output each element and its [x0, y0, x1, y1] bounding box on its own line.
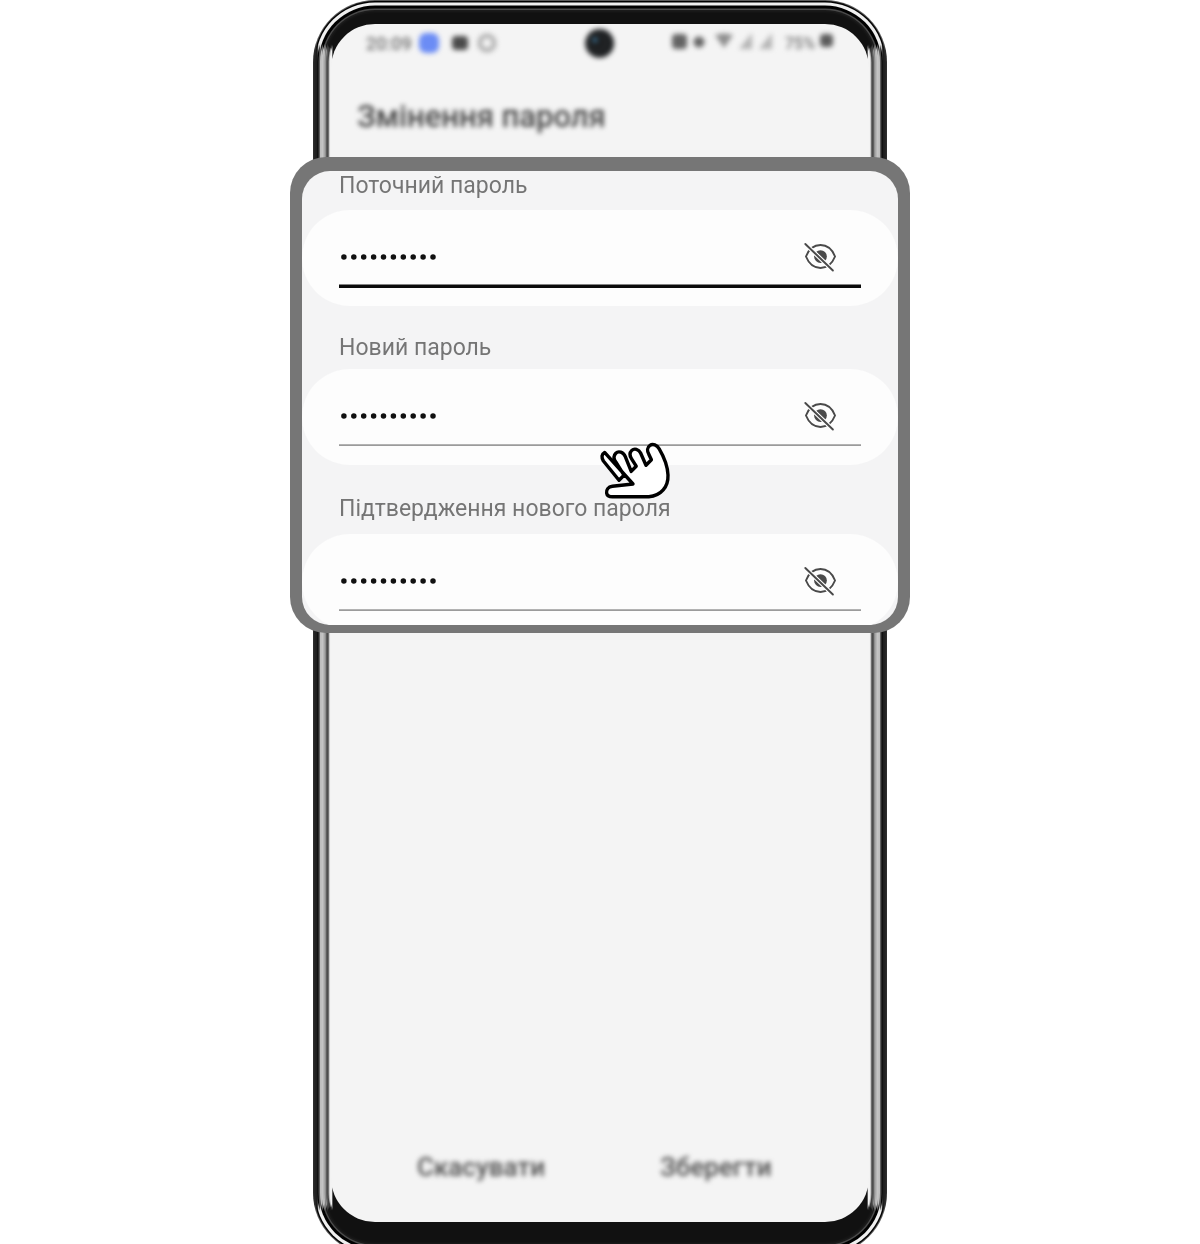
staticText: 20:09 — [366, 33, 412, 54]
button[interactable]: Show password — [805, 244, 836, 269]
staticText: Скасувати — [417, 1152, 546, 1182]
staticText: Новий пароль — [339, 334, 492, 361]
button[interactable]: Show password — [302, 210, 898, 306]
staticText: Підтвердження нового пароля — [339, 495, 671, 522]
staticText: Зберегти — [660, 1152, 772, 1182]
button[interactable]: Скасувати — [397, 1129, 565, 1205]
button[interactable]: Зберегти — [638, 1129, 794, 1205]
staticText: 75% — [785, 34, 815, 53]
staticText: Поточний пароль — [339, 172, 528, 199]
button[interactable]: Show password — [805, 568, 836, 593]
button[interactable]: Show password — [302, 534, 898, 625]
button[interactable]: Show password — [805, 403, 836, 428]
button[interactable]: Show password — [302, 369, 898, 465]
staticText: Змінення пароля — [357, 98, 606, 134]
